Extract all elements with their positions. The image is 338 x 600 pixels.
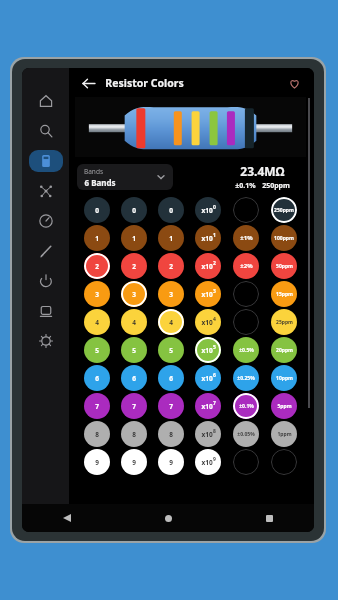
button[interactable]: 1 [121, 225, 147, 251]
staticText: 15ppm [276, 291, 293, 298]
button[interactable]: 0 [84, 197, 110, 223]
button[interactable]: Settings [29, 330, 63, 352]
button[interactable] [271, 449, 297, 475]
staticText: 8 [213, 428, 216, 435]
button[interactable] [233, 449, 259, 475]
button[interactable]: Home [29, 90, 63, 112]
staticText: 1 [169, 234, 173, 243]
button[interactable]: 6 [158, 365, 184, 391]
button[interactable]: 0 [158, 197, 184, 223]
button[interactable]: 4 [84, 309, 110, 335]
button[interactable]: 15ppm [271, 281, 297, 307]
staticText: 100ppm [274, 235, 294, 242]
button[interactable]: 8 [84, 421, 110, 447]
button[interactable]: Circuits [29, 180, 63, 202]
staticText: x10 [201, 346, 213, 355]
button[interactable]: 3 [121, 281, 147, 307]
button[interactable]: 50ppm [271, 253, 297, 279]
button[interactable]: x10 [195, 449, 221, 475]
button[interactable]: 1 [84, 225, 110, 251]
button[interactable]: 1 [158, 225, 184, 251]
button[interactable] [233, 197, 259, 223]
button[interactable]: 8 [158, 421, 184, 447]
button[interactable]: 6 [84, 365, 110, 391]
button[interactable]: 250ppm [271, 197, 297, 223]
staticText: ±2% [240, 262, 253, 270]
staticText: 1 [95, 234, 99, 243]
button[interactable]: 2 [158, 253, 184, 279]
button[interactable]: 25ppm [271, 309, 297, 335]
button[interactable]: 3 [158, 281, 184, 307]
button[interactable]: x10 [195, 281, 221, 307]
staticText: 1 [132, 234, 136, 243]
button[interactable]: 5 [84, 337, 110, 363]
button[interactable]: 9 [121, 449, 147, 475]
button[interactable]: Resistor calculator [29, 150, 63, 172]
button[interactable]: Devices [29, 300, 63, 322]
button[interactable]: 5 [121, 337, 147, 363]
button[interactable]: Back [77, 72, 99, 94]
button[interactable]: x10 [195, 393, 221, 419]
button[interactable]: Back [56, 507, 78, 529]
staticText: 0 [169, 206, 173, 215]
button[interactable]: x10 [195, 309, 221, 335]
staticText: 4 [95, 318, 99, 327]
button[interactable] [233, 281, 259, 307]
button[interactable]: 20ppm [271, 337, 297, 363]
button[interactable]: Tools [29, 240, 63, 262]
button[interactable]: 7 [84, 393, 110, 419]
staticText: 0 [213, 204, 216, 211]
staticText: 6 [95, 374, 99, 383]
button[interactable]: Bands [77, 164, 173, 190]
staticText: 5ppm [277, 403, 292, 410]
button[interactable]: 6 [121, 365, 147, 391]
button[interactable]: ±1% [233, 225, 259, 251]
button[interactable]: Favorite [284, 73, 304, 93]
staticText: 3 [132, 290, 136, 299]
button[interactable]: x10 [195, 421, 221, 447]
button[interactable]: 4 [121, 309, 147, 335]
staticText: 2 [95, 262, 99, 271]
button[interactable]: ±0.05% [233, 421, 259, 447]
button[interactable]: 10ppm [271, 365, 297, 391]
button[interactable]: x10 [195, 337, 221, 363]
button[interactable]: 9 [158, 449, 184, 475]
staticText: x10 [201, 262, 213, 271]
button[interactable]: ±0.1% [233, 393, 259, 419]
button[interactable]: Home [157, 507, 179, 529]
button[interactable]: 2 [84, 253, 110, 279]
staticText: 25ppm [276, 319, 293, 326]
button[interactable]: 2 [121, 253, 147, 279]
button[interactable]: x10 [195, 253, 221, 279]
button[interactable] [233, 309, 259, 335]
button[interactable]: ±0.5% [233, 337, 259, 363]
staticText: 8 [95, 430, 99, 439]
button[interactable]: x10 [195, 365, 221, 391]
button[interactable]: 5 [158, 337, 184, 363]
button[interactable]: Meter [29, 210, 63, 232]
button[interactable]: Search [29, 120, 63, 142]
button[interactable]: 8 [121, 421, 147, 447]
staticText: 23.4MΩ [240, 163, 285, 179]
button[interactable]: x10 [195, 197, 221, 223]
button[interactable]: Recents [258, 507, 280, 529]
button[interactable]: 1ppm [271, 421, 297, 447]
button[interactable]: 0 [121, 197, 147, 223]
button[interactable]: 7 [121, 393, 147, 419]
staticText: ±0.1% [239, 403, 254, 410]
staticText: 7 [169, 402, 173, 411]
button[interactable]: 4 [158, 309, 184, 335]
staticText: x10 [201, 234, 213, 243]
staticText: 2 [169, 262, 173, 271]
staticText: 9 [169, 458, 173, 467]
button[interactable]: Sensors [29, 270, 63, 292]
button[interactable]: ±0.25% [233, 365, 259, 391]
staticText: 5 [132, 346, 136, 355]
button[interactable]: 100ppm [271, 225, 297, 251]
button[interactable]: 7 [158, 393, 184, 419]
button[interactable]: x10 [195, 225, 221, 251]
button[interactable]: 5ppm [271, 393, 297, 419]
button[interactable]: 3 [84, 281, 110, 307]
button[interactable]: ±2% [233, 253, 259, 279]
button[interactable]: 9 [84, 449, 110, 475]
